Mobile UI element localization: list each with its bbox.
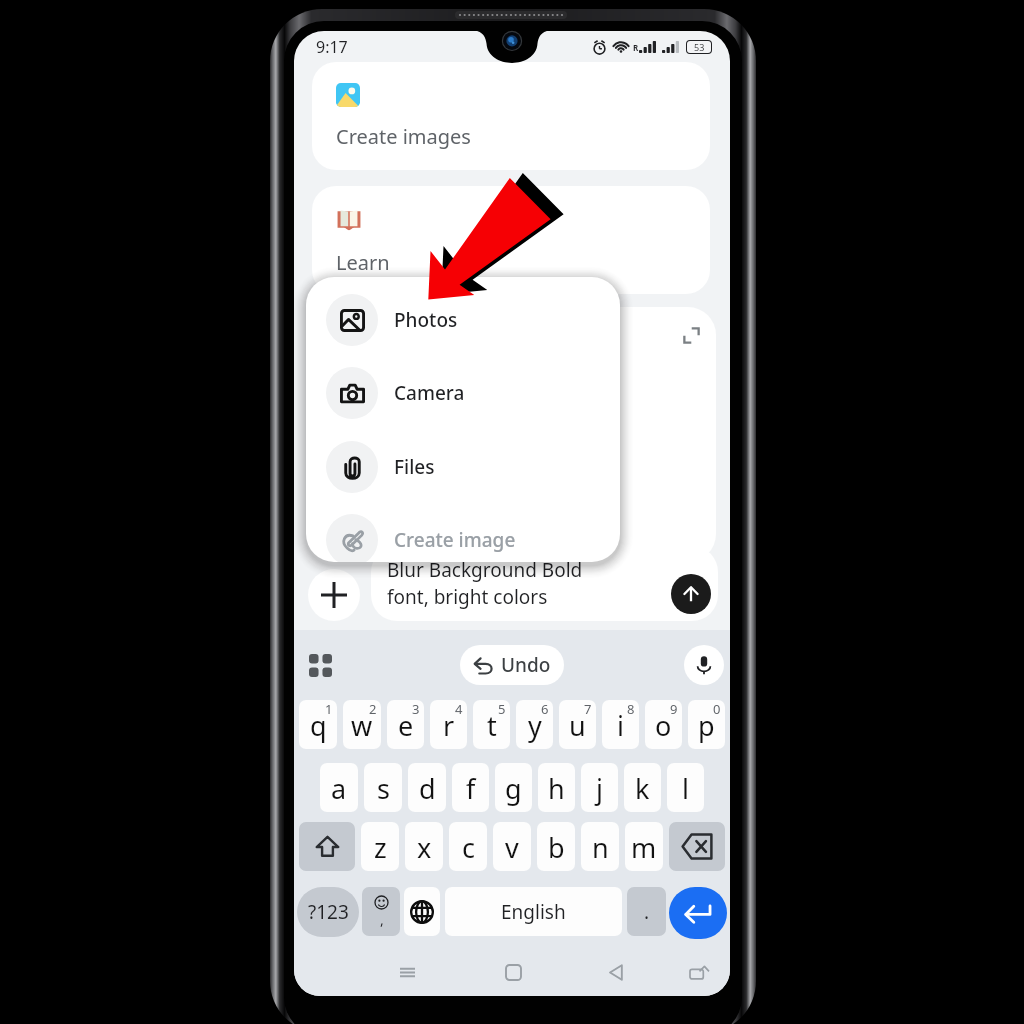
button[interactable]: p [688, 700, 725, 749]
staticText: r [443, 707, 455, 744]
button[interactable]: y [516, 700, 553, 749]
button[interactable]: w [343, 700, 381, 749]
button[interactable]: Create images [312, 62, 710, 170]
button[interactable]: o [645, 700, 682, 749]
button[interactable]: s [364, 763, 402, 812]
button[interactable]: Create image [306, 504, 620, 562]
button[interactable]: Change language [404, 887, 440, 936]
button[interactable]: Undo [460, 645, 564, 685]
button[interactable]: Enter [669, 887, 727, 939]
button[interactable]: g [495, 763, 532, 812]
staticText: h [548, 770, 565, 807]
button[interactable]: Blur Background Bold [371, 546, 718, 621]
staticText: j [596, 770, 603, 807]
staticText: , [380, 910, 384, 929]
staticText: s [377, 770, 390, 807]
staticText: q [310, 707, 327, 744]
staticText: v [505, 829, 519, 866]
button[interactable]: f [452, 763, 489, 812]
button[interactable]: r [430, 700, 467, 749]
button[interactable]: l [667, 763, 704, 812]
staticText: Create image [394, 527, 516, 553]
staticText: Camera [394, 380, 465, 406]
button[interactable]: e [387, 700, 424, 749]
staticText: 9 [670, 700, 678, 718]
button[interactable]: Keyboard modes [301, 646, 339, 684]
button[interactable]: k [624, 763, 661, 812]
button[interactable]: u [559, 700, 596, 749]
button[interactable]: Voice input [684, 645, 724, 685]
button[interactable]: n [581, 822, 619, 871]
button[interactable]: m [625, 822, 663, 871]
button[interactable]: Send [671, 574, 711, 614]
staticText: n [592, 829, 609, 866]
button[interactable]: Shift [299, 822, 355, 871]
button[interactable]: q [299, 700, 337, 749]
staticText: t [487, 707, 497, 744]
button[interactable]: Back [596, 952, 636, 992]
staticText: u [569, 707, 586, 744]
button[interactable]: b [537, 822, 575, 871]
staticText: y [528, 707, 542, 744]
staticText: w [351, 707, 373, 744]
staticText: g [505, 770, 522, 807]
button[interactable]: c [449, 822, 487, 871]
button[interactable]: Expand [312, 307, 716, 562]
button[interactable]: English [445, 887, 622, 936]
button[interactable]: ?123 [297, 887, 359, 937]
staticText: 7 [584, 700, 592, 718]
button[interactable]: Learn [312, 186, 710, 294]
staticText: 53 [694, 41, 705, 53]
staticText: e [398, 707, 414, 744]
staticText: 0 [713, 700, 721, 718]
button[interactable]: Photos [306, 284, 620, 356]
button[interactable]: v [493, 822, 531, 871]
staticText: English [501, 899, 566, 925]
button[interactable]: Home [493, 952, 533, 992]
staticText: Files [394, 454, 435, 480]
staticText: 5 [498, 700, 506, 718]
button[interactable]: x [405, 822, 443, 871]
button[interactable]: z [361, 822, 399, 871]
button[interactable]: Backspace [669, 822, 725, 871]
staticText: Blur Background Bold [387, 557, 583, 583]
button[interactable]: Camera [306, 357, 620, 429]
button[interactable]: t [473, 700, 510, 749]
button[interactable]: i [602, 700, 639, 749]
staticText: Photos [394, 307, 458, 333]
staticText: k [635, 770, 650, 807]
button[interactable]: Add attachment [308, 569, 360, 621]
staticText: Undo [501, 652, 551, 678]
staticText: i [617, 707, 624, 744]
button[interactable]: Emoji [362, 887, 400, 936]
button[interactable]: . [627, 887, 666, 936]
button[interactable]: h [538, 763, 575, 812]
button[interactable]: d [408, 763, 446, 812]
button[interactable]: a [320, 763, 358, 812]
staticText: 3 [412, 700, 420, 718]
staticText: ?123 [308, 899, 349, 925]
staticText: m [631, 829, 657, 866]
staticText: . [644, 899, 650, 925]
button[interactable]: Files [306, 431, 620, 503]
staticText: 2 [369, 700, 377, 718]
staticText: Learn [336, 249, 390, 276]
staticText: f [466, 770, 476, 807]
staticText: Create images [336, 123, 471, 150]
staticText: font, bright colors [387, 584, 548, 610]
staticText: b [548, 829, 565, 866]
button[interactable]: j [581, 763, 618, 812]
staticText: 8 [627, 700, 635, 718]
staticText: l [682, 770, 689, 807]
staticText: a [331, 770, 347, 807]
button[interactable]: Recents [679, 952, 719, 992]
staticText: d [419, 770, 436, 807]
button[interactable]: Menu [387, 952, 427, 992]
staticText: z [374, 829, 387, 866]
staticText: c [462, 829, 475, 866]
staticText: x [417, 829, 432, 866]
button[interactable]: Expand [683, 327, 700, 344]
staticText: 9:17 [316, 36, 348, 58]
staticText: 4 [455, 700, 463, 718]
staticText: o [655, 707, 672, 744]
